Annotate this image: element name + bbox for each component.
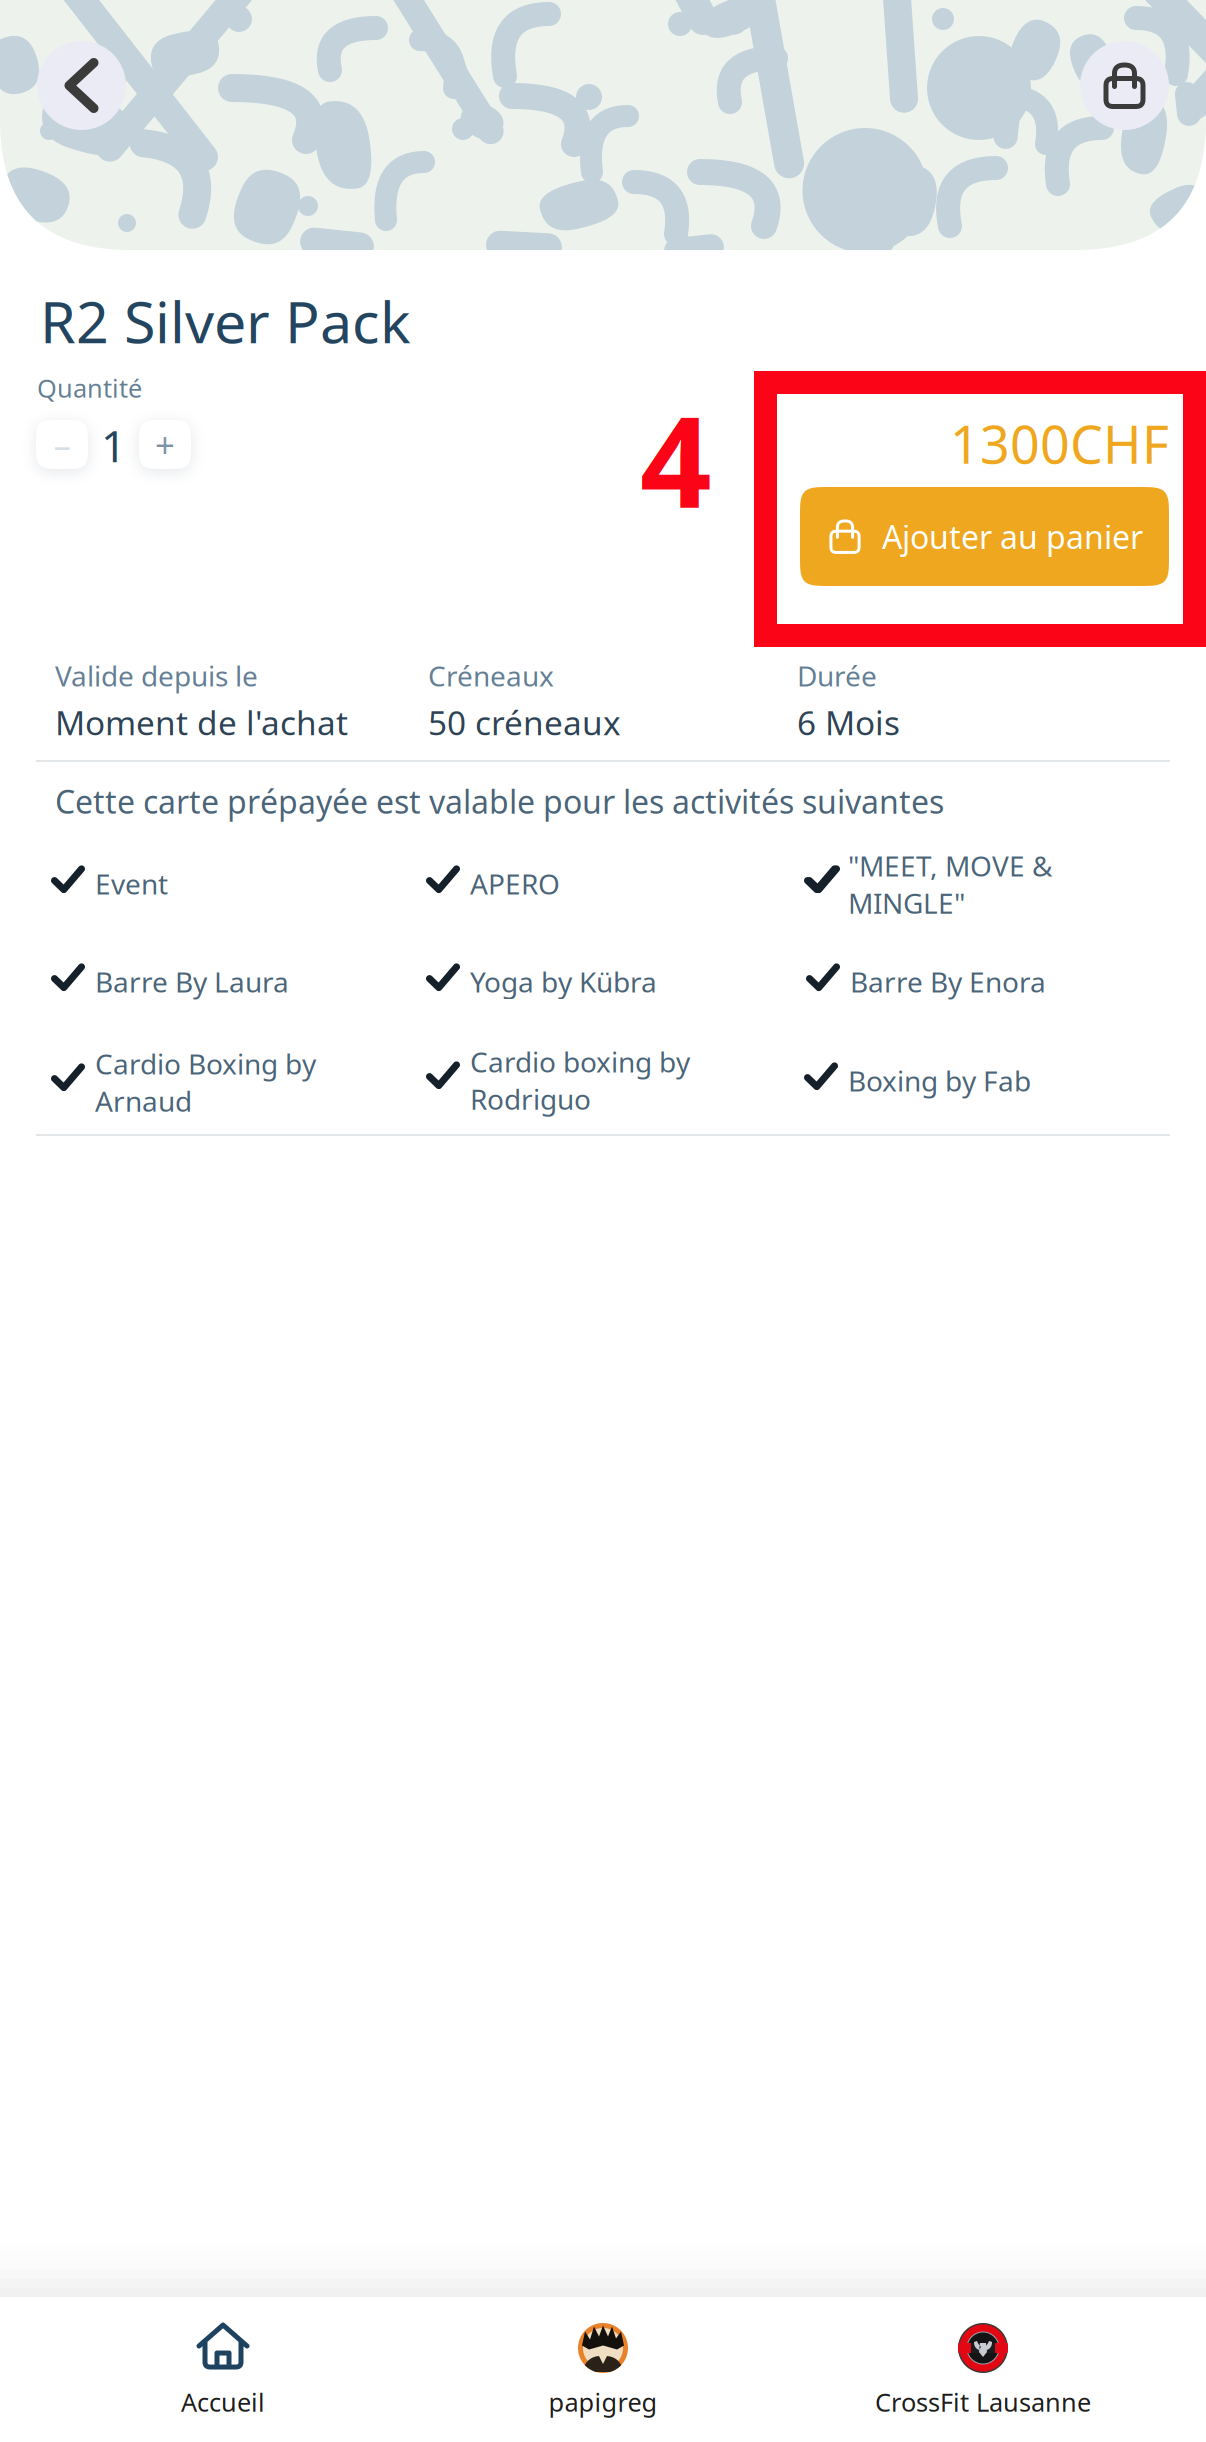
- button[interactable]: papigreg: [413, 2323, 793, 2442]
- button[interactable]: Retour: [37, 41, 126, 130]
- button[interactable]: CrossFit Lausanne: [793, 2323, 1173, 2442]
- staticText: Barre By Laura: [95, 963, 289, 1000]
- staticText: papigreg: [548, 2385, 657, 2419]
- button[interactable]: Panier: [1080, 41, 1169, 130]
- staticText: CrossFit Lausanne: [875, 2385, 1091, 2419]
- staticText: 1300CHF: [950, 409, 1169, 478]
- staticText: Cardio Boxing by Arnaud: [95, 1045, 316, 1119]
- staticText: Moment de l'achat: [55, 700, 348, 744]
- staticText: Event: [95, 865, 168, 902]
- staticText: 1: [101, 416, 126, 474]
- staticText: Valide depuis le: [55, 657, 258, 694]
- staticText: Barre By Enora: [850, 963, 1046, 1000]
- staticText: Cette carte prépayée est valable pour le…: [55, 780, 944, 822]
- staticText: Quantité: [37, 371, 142, 405]
- staticText: Cardio boxing by Rodriguo: [470, 1043, 690, 1117]
- staticText: Durée: [797, 657, 877, 694]
- button[interactable]: Ajouter au panier: [800, 487, 1169, 586]
- staticText: Créneaux: [428, 657, 554, 694]
- button[interactable]: Diminuer la quantité: [36, 420, 88, 469]
- staticText: Accueil: [181, 2385, 265, 2419]
- staticText: R2 Silver Pack: [40, 283, 411, 359]
- button[interactable]: Augmenter la quantité: [139, 420, 191, 469]
- staticText: "MEET, MOVE & MINGLE": [848, 847, 1052, 921]
- staticText: APERO: [470, 865, 560, 902]
- staticText: +: [155, 421, 175, 467]
- staticText: Ajouter au panier: [882, 515, 1143, 558]
- staticText: Boxing by Fab: [848, 1062, 1031, 1099]
- staticText: 50 créneaux: [428, 700, 621, 744]
- staticText: Yoga by Kübra: [470, 963, 657, 1000]
- staticText: 4: [640, 376, 712, 542]
- staticText: –: [53, 421, 70, 467]
- staticText: 6 Mois: [797, 700, 900, 744]
- button[interactable]: Accueil: [33, 2323, 413, 2442]
